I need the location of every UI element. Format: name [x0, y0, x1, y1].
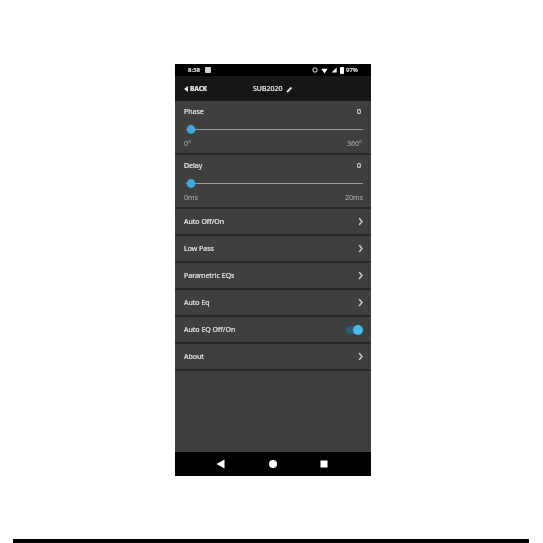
- button[interactable]: [175, 176, 371, 191]
- button[interactable]: Auto Eq: [175, 290, 371, 315]
- button[interactable]: Parametric EQs: [175, 263, 371, 288]
- staticText: 0ms: [184, 193, 198, 203]
- staticText: 20ms: [345, 193, 363, 203]
- staticText: 97%: [346, 66, 358, 74]
- staticText: SUB2020: [253, 84, 283, 94]
- staticText: Parametric EQs: [184, 271, 235, 281]
- staticText: 0: [357, 161, 362, 171]
- staticText: 8:38: [188, 66, 200, 74]
- button[interactable]: Auto EQ Off/On: [175, 317, 371, 342]
- button[interactable]: BACK: [184, 84, 208, 93]
- staticText: 360°: [347, 139, 363, 149]
- staticText: Phase: [184, 107, 204, 117]
- staticText: About: [184, 352, 204, 362]
- staticText: 0°: [184, 139, 191, 149]
- staticText: BACK: [190, 84, 208, 93]
- button[interactable]: Auto Off/On: [175, 209, 371, 234]
- staticText: Low Pass: [184, 244, 214, 254]
- button[interactable]: Low Pass: [175, 236, 371, 261]
- staticText: Auto Eq: [184, 298, 210, 308]
- button[interactable]: SUB2020: [253, 84, 293, 94]
- staticText: 0: [357, 107, 362, 117]
- button[interactable]: [175, 122, 371, 137]
- button[interactable]: About: [175, 344, 371, 369]
- button[interactable]: [346, 325, 363, 335]
- button[interactable]: [175, 452, 371, 476]
- staticText: Auto Off/On: [184, 217, 225, 227]
- staticText: Delay: [184, 161, 203, 171]
- staticText: Auto EQ Off/On: [184, 325, 236, 335]
